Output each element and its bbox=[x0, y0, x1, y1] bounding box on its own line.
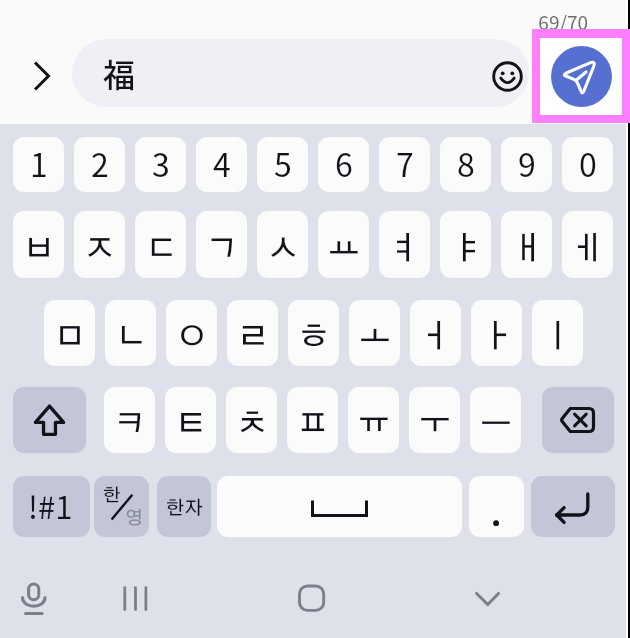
button[interactable]: ㄷ bbox=[135, 211, 186, 278]
button[interactable]: 0 bbox=[562, 137, 613, 192]
staticText: 福 bbox=[103, 50, 136, 96]
button[interactable]: ㅗ bbox=[349, 300, 400, 366]
staticText: ㅜ bbox=[419, 408, 451, 440]
button[interactable]: Space bbox=[217, 476, 462, 537]
button[interactable]: ㅇ bbox=[166, 300, 217, 366]
button[interactable]: ㅠ bbox=[348, 387, 399, 453]
staticText: 69/70 bbox=[400, 8, 588, 36]
staticText: ㄷ bbox=[145, 233, 177, 265]
button[interactable]: Korean English toggle bbox=[94, 476, 149, 537]
button[interactable]: ㅊ bbox=[226, 387, 277, 453]
staticText: !#1 bbox=[28, 483, 73, 528]
staticText: ㅗ bbox=[359, 321, 391, 353]
button[interactable]: 7 bbox=[379, 137, 430, 192]
staticText: 4 bbox=[213, 140, 231, 186]
button[interactable]: 9 bbox=[501, 137, 552, 192]
staticText: 한 bbox=[103, 487, 121, 505]
button[interactable]: Voice input bbox=[14, 576, 54, 616]
staticText: 영 bbox=[125, 510, 143, 528]
staticText: ㄱ bbox=[206, 233, 238, 265]
button[interactable]: ㅏ bbox=[471, 300, 522, 366]
staticText: ㅕ bbox=[389, 233, 421, 265]
staticText: 1 bbox=[30, 140, 48, 186]
button[interactable]: ㅎ bbox=[288, 300, 339, 366]
button[interactable]: Period bbox=[469, 476, 524, 537]
button[interactable]: 2 bbox=[74, 137, 125, 192]
button[interactable]: ㅋ bbox=[104, 387, 155, 453]
button[interactable]: Shift bbox=[13, 387, 86, 453]
button[interactable]: Home bbox=[292, 578, 332, 618]
staticText: 2 bbox=[91, 140, 109, 186]
button[interactable]: 6 bbox=[318, 137, 369, 192]
button[interactable]: Send bbox=[540, 38, 622, 115]
staticText: ㅇ bbox=[176, 321, 208, 353]
button[interactable]: ㅌ bbox=[165, 387, 216, 453]
staticText: ㅏ bbox=[481, 321, 513, 353]
button[interactable]: ㅓ bbox=[410, 300, 461, 366]
button[interactable]: 1 bbox=[13, 137, 64, 192]
button[interactable]: Hide keyboard bbox=[466, 580, 506, 620]
button[interactable]: ㅡ bbox=[470, 387, 521, 453]
staticText: 0 bbox=[579, 140, 597, 186]
staticText: 6 bbox=[335, 140, 353, 186]
staticText: ㅡ bbox=[480, 408, 512, 440]
button[interactable]: 5 bbox=[257, 137, 308, 192]
staticText: ㅠ bbox=[358, 408, 390, 440]
button[interactable]: 8 bbox=[440, 137, 491, 192]
button[interactable]: 3 bbox=[135, 137, 186, 192]
button[interactable]: Recents bbox=[115, 578, 156, 619]
button[interactable]: ㅣ bbox=[532, 300, 583, 366]
staticText: 한자 bbox=[166, 499, 203, 518]
staticText: 3 bbox=[152, 140, 170, 186]
staticText: ㅓ bbox=[420, 321, 452, 353]
staticText: ㅛ bbox=[328, 233, 360, 265]
staticText: ㅔ bbox=[572, 233, 604, 265]
button[interactable]: Expand toolbar bbox=[21, 55, 63, 97]
staticText: ㅎ bbox=[298, 321, 330, 353]
staticText: ㅊ bbox=[236, 408, 268, 440]
button[interactable]: ㅂ bbox=[13, 211, 64, 278]
button[interactable]: Enter bbox=[531, 476, 615, 537]
button[interactable]: ㅔ bbox=[562, 211, 613, 278]
button[interactable]: 한자 bbox=[157, 476, 211, 537]
staticText: ㅍ bbox=[297, 408, 329, 440]
staticText: ㅐ bbox=[511, 233, 543, 265]
button[interactable]: ㄱ bbox=[196, 211, 247, 278]
button[interactable]: Emoji bbox=[486, 55, 529, 98]
staticText: ㅅ bbox=[267, 233, 299, 265]
button[interactable]: !#1 bbox=[13, 476, 90, 537]
button[interactable]: ㅍ bbox=[287, 387, 338, 453]
button[interactable]: ㄹ bbox=[227, 300, 278, 366]
button[interactable]: ㅜ bbox=[409, 387, 460, 453]
staticText: ㅋ bbox=[114, 408, 146, 440]
staticText: ㅈ bbox=[84, 233, 116, 265]
staticText: ㄴ bbox=[115, 321, 147, 353]
staticText: 9 bbox=[518, 140, 536, 186]
staticText: ㅁ bbox=[54, 321, 86, 353]
button[interactable]: ㅅ bbox=[257, 211, 308, 278]
button[interactable]: ㅐ bbox=[501, 211, 552, 278]
button[interactable]: ㅈ bbox=[74, 211, 125, 278]
button[interactable]: 福 bbox=[72, 39, 529, 107]
staticText: 5 bbox=[274, 140, 292, 186]
staticText: ㅑ bbox=[450, 233, 482, 265]
staticText: 7 bbox=[396, 140, 414, 186]
button[interactable]: ㅁ bbox=[44, 300, 95, 366]
staticText: 8 bbox=[457, 140, 475, 186]
staticText: ㅣ bbox=[542, 321, 574, 353]
staticText: ㅂ bbox=[23, 233, 55, 265]
staticText: ㅌ bbox=[175, 408, 207, 440]
button[interactable]: ㅑ bbox=[440, 211, 491, 278]
button[interactable]: Backspace bbox=[542, 387, 614, 453]
button[interactable]: ㄴ bbox=[105, 300, 156, 366]
staticText: ㄹ bbox=[237, 321, 269, 353]
button[interactable]: ㅕ bbox=[379, 211, 430, 278]
button[interactable]: ㅛ bbox=[318, 211, 369, 278]
button[interactable]: 4 bbox=[196, 137, 247, 192]
